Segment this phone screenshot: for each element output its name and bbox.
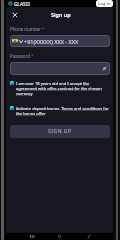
staticText: Log in: [98, 1, 111, 6]
staticText: GLASSI: [14, 1, 30, 7]
staticText: Password: [10, 53, 30, 59]
button[interactable]: Activate deposit bonus. Terms and condit…: [10, 106, 110, 116]
button[interactable]: Close: [10, 10, 19, 19]
staticText: *: [31, 53, 34, 59]
button[interactable]: Log in: [96, 0, 113, 7]
button[interactable]: SIGN UP: [10, 125, 110, 138]
button[interactable]: Home: [56, 233, 63, 240]
staticText: Phone number: [10, 26, 41, 32]
staticText: +91(XXXXX) XXX - XXX: [24, 38, 79, 45]
staticText: Sign up: [51, 11, 71, 18]
button[interactable]: Back: [85, 233, 92, 240]
button[interactable]: Show password: [10, 62, 110, 75]
staticText: Activate deposit bonus. Terms and condit…: [16, 106, 110, 116]
button[interactable]: Recents: [28, 233, 35, 240]
button[interactable]: +91(XXXXX) XXX - XXX: [10, 35, 110, 47]
staticText: I am over 18 years old and I accept the …: [16, 81, 110, 96]
button[interactable]: Show password: [101, 65, 108, 72]
staticText: *: [42, 26, 45, 32]
staticText: SIGN UP: [48, 128, 72, 135]
button[interactable]: I am over 18 years old and I accept the …: [10, 81, 110, 96]
